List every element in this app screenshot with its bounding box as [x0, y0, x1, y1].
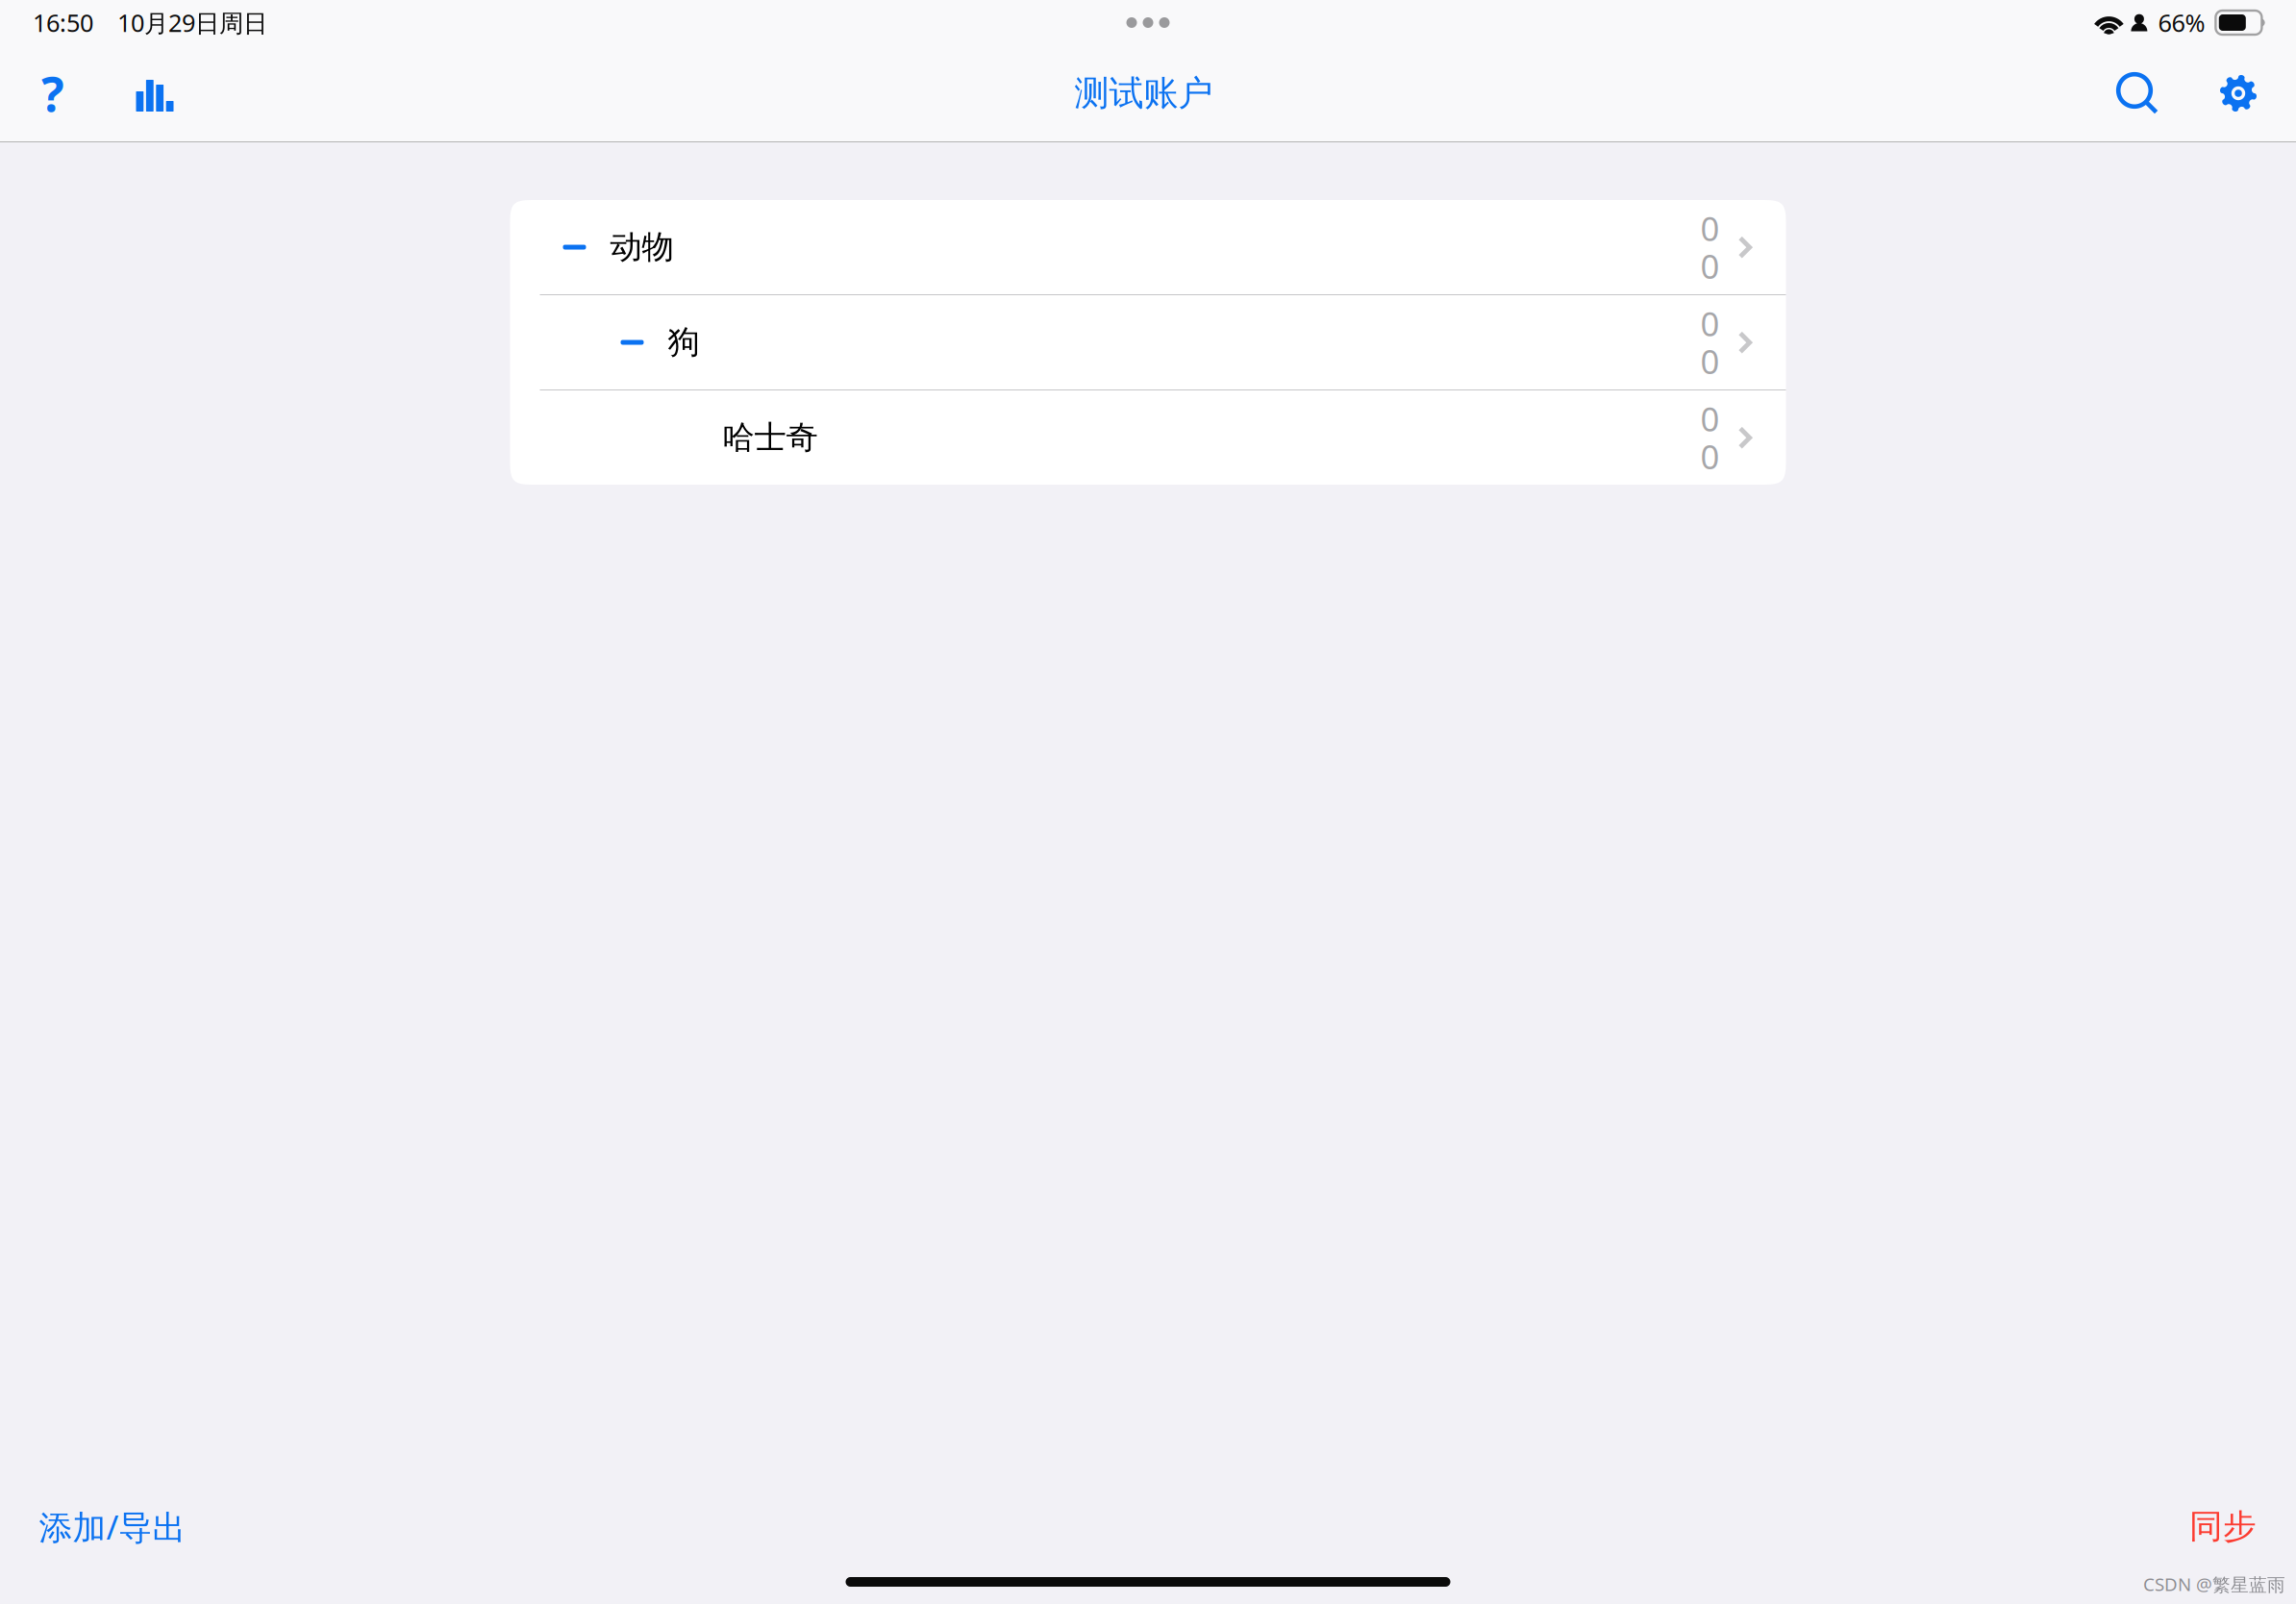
button[interactable]: 狗 — [510, 295, 1786, 389]
staticText: 0 — [1700, 338, 1720, 384]
button[interactable]: Settings — [2215, 57, 2261, 129]
staticText: 0 — [1700, 434, 1720, 479]
button[interactable]: 添加/导出 — [21, 1495, 204, 1558]
staticText: 动物 — [610, 227, 674, 267]
staticText: 同步 — [2189, 1506, 2257, 1548]
staticText: CSDN @繁星蓝雨 — [2143, 1572, 2285, 1596]
staticText: ? — [41, 61, 64, 126]
staticText: 0 — [1700, 243, 1720, 289]
button[interactable]: Search — [2109, 57, 2163, 129]
staticText: 添加/导出 — [39, 1504, 186, 1549]
button[interactable]: Help — [30, 57, 76, 129]
button[interactable]: 动物 — [510, 200, 1786, 294]
staticText: 哈士奇 — [723, 417, 818, 458]
button[interactable]: 同步 — [2180, 1495, 2266, 1558]
staticText: 0 — [1700, 396, 1720, 441]
button[interactable]: Statistics — [132, 57, 178, 129]
staticText: 0 — [1700, 301, 1720, 346]
staticText: 测试账户 — [1074, 71, 1213, 115]
staticText: 66% — [2158, 6, 2205, 39]
staticText: 10月29日周日 — [117, 6, 267, 39]
staticText: 狗 — [668, 322, 699, 363]
staticText: 16:50 — [33, 6, 93, 39]
staticText: 0 — [1700, 206, 1720, 251]
button[interactable]: 哈士奇 — [510, 390, 1786, 485]
